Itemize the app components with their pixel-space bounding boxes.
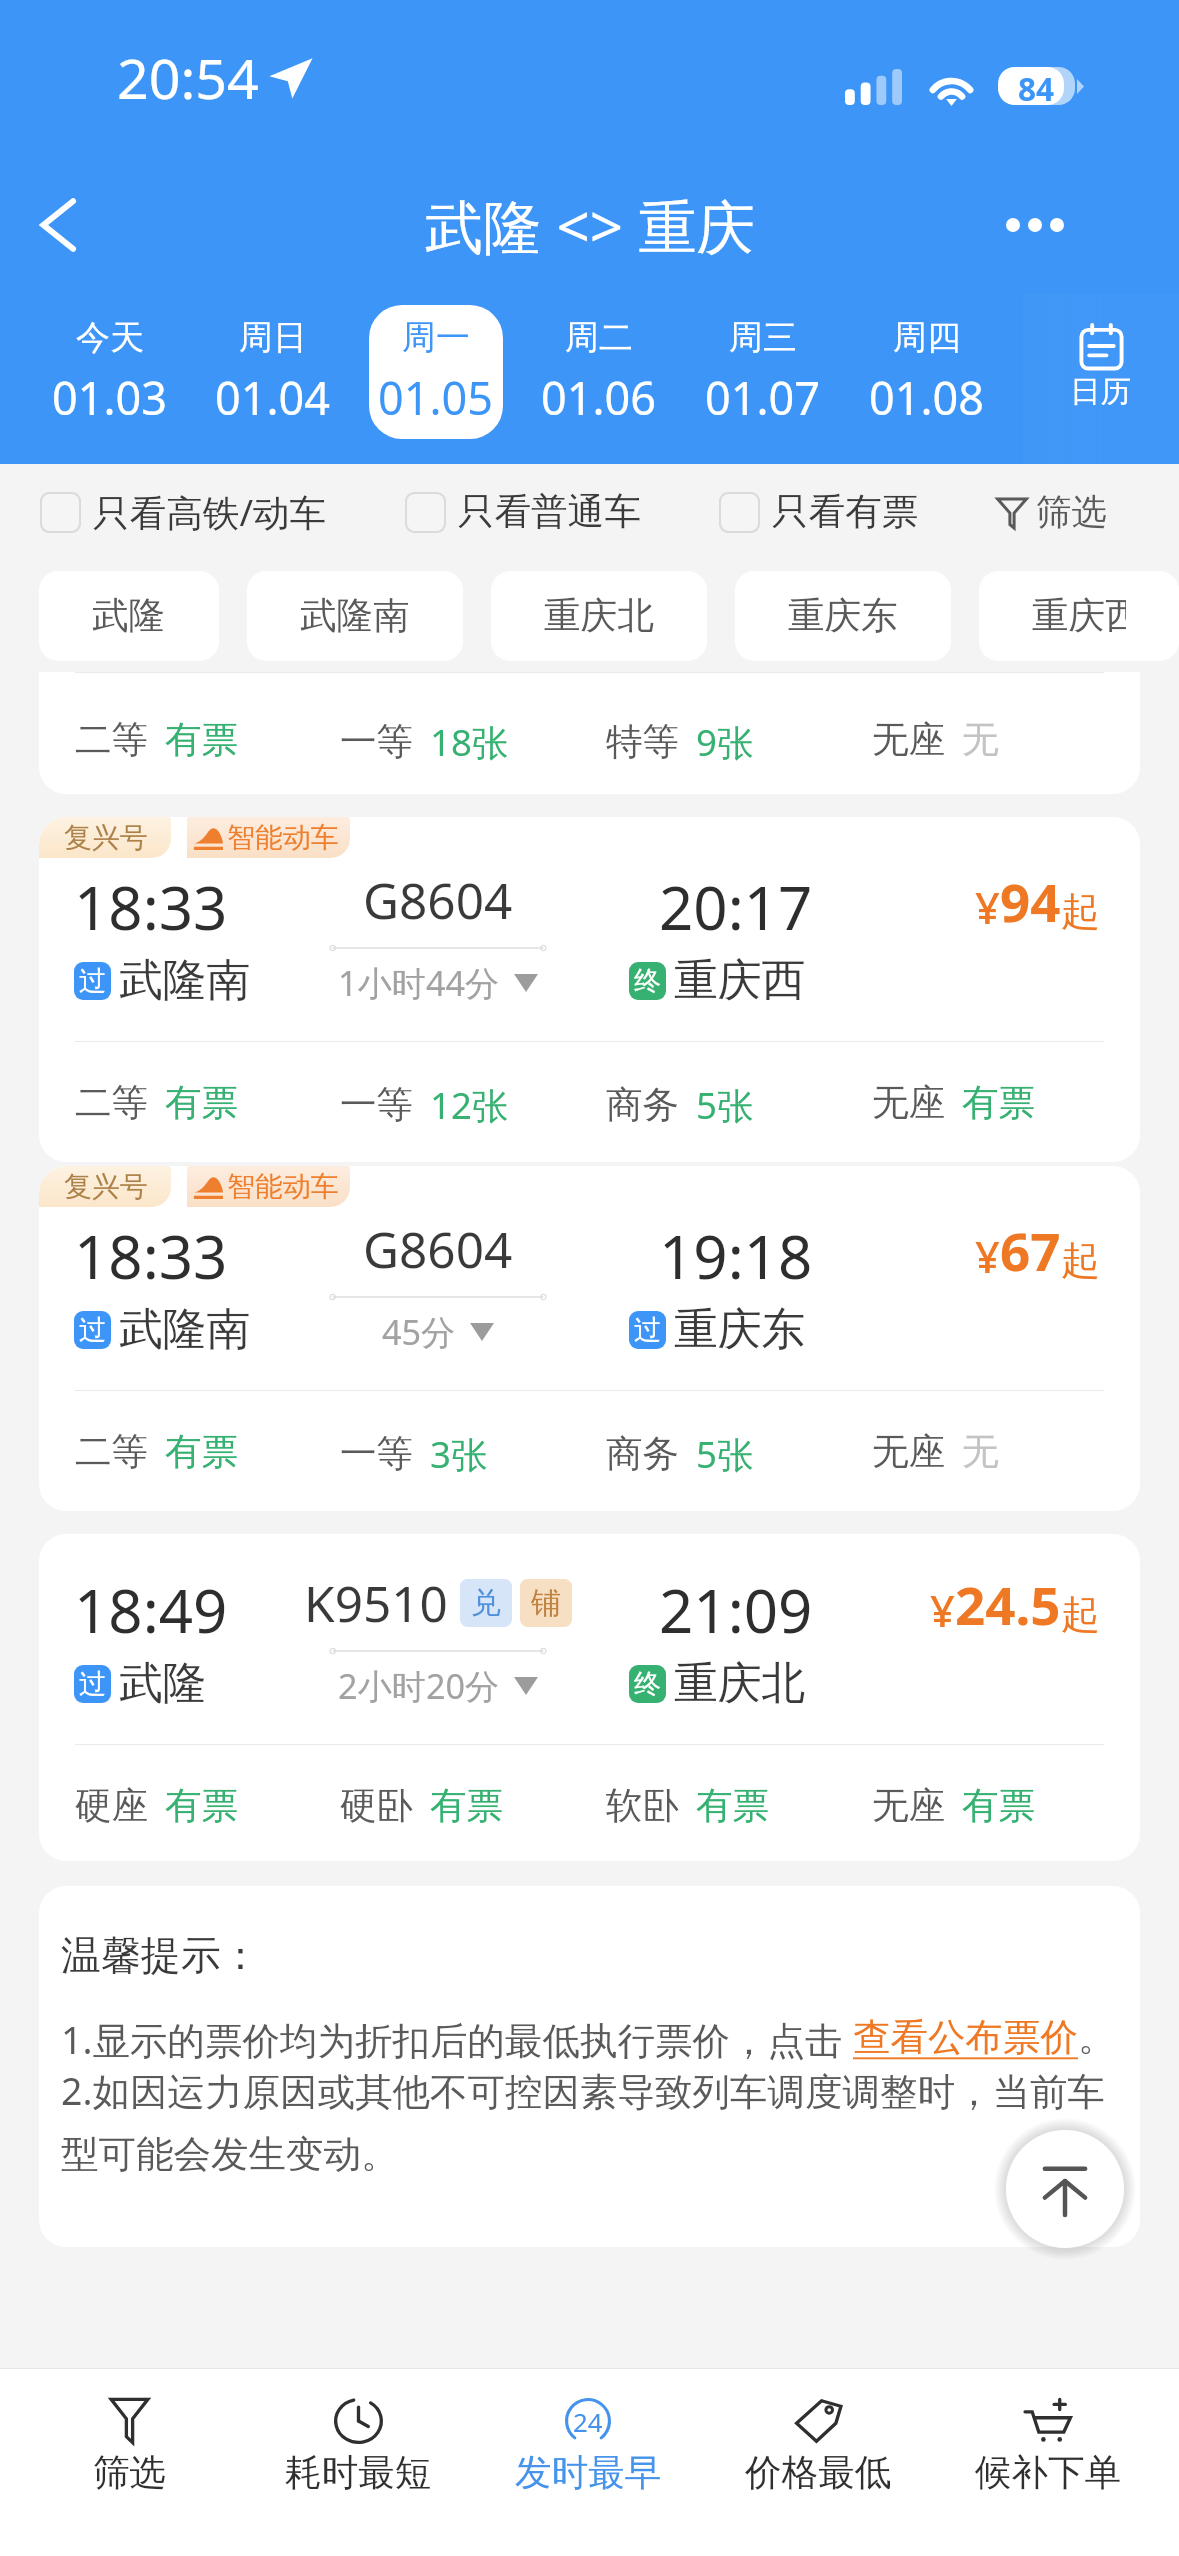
button[interactable]: 周三 (696, 305, 830, 439)
button[interactable]: 24 (473, 2369, 703, 2556)
staticText: 94 (1000, 866, 1061, 938)
button[interactable]: 筛选 (15, 2369, 244, 2556)
staticText: ¥ (975, 877, 1000, 936)
staticText: 01.03 (52, 367, 168, 428)
staticText: 周四 (893, 316, 961, 359)
button[interactable]: Back (15, 180, 99, 270)
button[interactable]: 只看普通车 (405, 489, 641, 535)
staticText: 有票 (165, 1783, 239, 1829)
staticText: 有票 (165, 717, 239, 763)
staticText: 9张 (696, 717, 754, 767)
staticText: 起 (1061, 1236, 1100, 1285)
staticText: 硬卧 (340, 1783, 414, 1829)
staticText: 24.5 (955, 1569, 1061, 1641)
button[interactable]: 筛选 (997, 490, 1107, 535)
staticText: 候补下单 (975, 2450, 1122, 2496)
staticText: 只看高铁/动车 (93, 487, 327, 537)
staticText: 2小时20分 (338, 1662, 500, 1709)
staticText: 今天 (76, 316, 144, 359)
button[interactable]: 武隆南 (247, 571, 463, 661)
staticText: 无座 (872, 717, 946, 763)
staticText: 重庆东 (674, 1302, 806, 1357)
button[interactable]: 周日 (206, 305, 340, 439)
button[interactable]: Back to top (1006, 2130, 1124, 2248)
staticText: 有票 (696, 1783, 770, 1829)
staticText: 有票 (962, 1080, 1036, 1126)
staticText: 45分 (382, 1308, 456, 1355)
staticText: 温馨提示： (61, 1931, 261, 1981)
button[interactable]: 复兴号 (39, 1166, 1140, 1511)
button[interactable]: 二等 (39, 672, 1140, 794)
staticText: 商务 (606, 1431, 680, 1477)
button[interactable]: 重庆西 (979, 571, 1179, 661)
staticText: 一等 (340, 1431, 414, 1477)
button[interactable]: 只看有票 (719, 489, 919, 535)
button[interactable]: 周四 (860, 305, 994, 439)
staticText: 武隆 (119, 1656, 207, 1711)
staticText: 二等 (75, 1429, 149, 1475)
staticText: 耗时最短 (285, 2450, 432, 2496)
staticText: 5张 (696, 1429, 754, 1479)
staticText: 有票 (165, 1080, 239, 1126)
button[interactable]: 价格最低 (703, 2369, 933, 2556)
staticText: 重庆北 (674, 1656, 806, 1711)
button[interactable]: 复兴号 (39, 817, 1140, 1162)
staticText: 筛选 (1036, 490, 1107, 535)
staticText: 20:54 (117, 40, 259, 116)
staticText: 只看普通车 (458, 489, 641, 535)
staticText: 有票 (962, 1783, 1036, 1829)
staticText: 武隆 (92, 593, 166, 639)
staticText: 起 (1061, 1590, 1100, 1639)
staticText: 周三 (729, 316, 797, 359)
staticText: 18:33 (74, 1215, 228, 1297)
staticText: 01.07 (705, 367, 821, 428)
button[interactable]: 重庆东 (735, 571, 951, 661)
staticText: 一等 (340, 719, 414, 765)
button[interactable]: 周一 (369, 305, 503, 439)
staticText: 终 (634, 964, 661, 998)
staticText: 复兴号 (64, 820, 148, 855)
staticText: 武隆南 (300, 593, 410, 639)
staticText: 01.06 (541, 367, 657, 428)
staticText: 01.05 (378, 367, 494, 428)
staticText: 兑 (471, 1584, 501, 1622)
staticText: 5张 (696, 1080, 754, 1130)
staticText: 商务 (606, 1082, 680, 1128)
button[interactable]: 候补下单 (933, 2369, 1163, 2556)
staticText: ¥ (930, 1580, 955, 1639)
button[interactable]: 今天 (43, 305, 177, 439)
staticText: 特等 (606, 719, 680, 765)
staticText: 21:09 (659, 1569, 813, 1651)
button[interactable]: 18:49 (39, 1534, 1140, 1861)
staticText: 18:33 (74, 866, 228, 948)
staticText: 二等 (75, 1080, 149, 1126)
button[interactable]: 重庆北 (491, 571, 707, 661)
staticText: 无座 (872, 1080, 946, 1126)
staticText: 3张 (430, 1429, 488, 1479)
button[interactable]: Calendar (1023, 294, 1179, 464)
staticText: 重庆北 (544, 593, 654, 639)
button[interactable]: 武隆 (39, 571, 219, 661)
staticText: 。 (1078, 2014, 1107, 2061)
staticText: 18:49 (74, 1569, 228, 1651)
staticText: 终 (634, 1667, 661, 1701)
staticText: 01.08 (869, 367, 985, 428)
staticText: 智能动车 (227, 820, 339, 855)
staticText: 无座 (872, 1429, 946, 1475)
staticText: 周二 (565, 316, 633, 359)
staticText: 无座 (872, 1783, 946, 1829)
staticText: 起 (1061, 887, 1100, 936)
button[interactable]: 只看高铁/动车 (40, 487, 327, 537)
staticText: 一等 (340, 1082, 414, 1128)
staticText: 无 (962, 717, 999, 763)
staticText: G8604 (363, 866, 513, 933)
staticText: K9510 (304, 1569, 448, 1636)
button[interactable]: 周二 (532, 305, 666, 439)
staticText: 软卧 (606, 1783, 680, 1829)
button[interactable]: 耗时最短 (244, 2369, 473, 2556)
staticText: 复兴号 (64, 1169, 148, 1204)
button[interactable]: More options (996, 180, 1074, 270)
staticText: G8604 (363, 1215, 513, 1282)
staticText: 有票 (165, 1429, 239, 1475)
staticText: 无 (962, 1429, 999, 1475)
